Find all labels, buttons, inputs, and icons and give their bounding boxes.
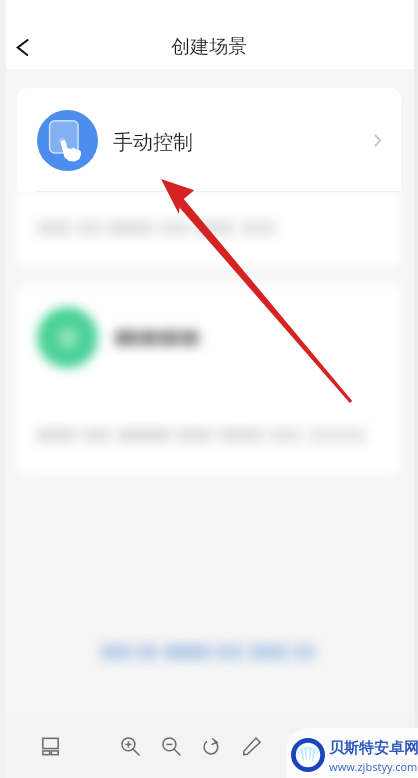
button[interactable]: Back <box>3 28 41 66</box>
staticText: 贝斯特安卓网 <box>329 739 418 758</box>
button[interactable]: Layout <box>33 729 67 763</box>
button[interactable]: Zoom out <box>154 729 188 763</box>
button[interactable]: Rotate <box>195 729 229 763</box>
staticText: 手动控制 <box>113 130 193 155</box>
button[interactable]: Zoom in <box>113 729 147 763</box>
staticText: www.zjbstyy.com <box>329 759 418 774</box>
button[interactable]: Edit <box>235 729 269 763</box>
staticText: 创建场景 <box>171 35 247 59</box>
button[interactable]: 手动控制 <box>17 88 401 192</box>
